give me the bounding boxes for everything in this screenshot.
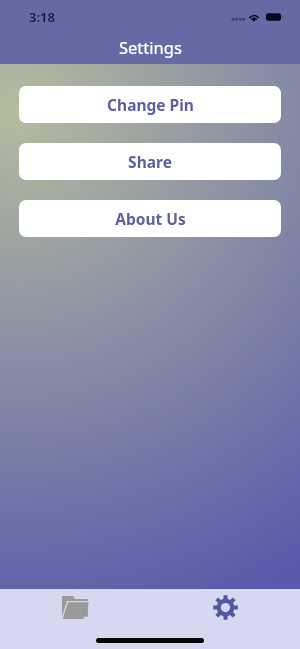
button[interactable]: Settings bbox=[202, 591, 248, 623]
staticText: 3:18 bbox=[29, 8, 55, 26]
button[interactable]: Share bbox=[19, 143, 281, 180]
button[interactable]: Files bbox=[52, 591, 98, 623]
staticText: Share bbox=[128, 151, 172, 172]
staticText: About Us bbox=[115, 208, 186, 229]
staticText: Change Pin bbox=[107, 94, 194, 115]
button[interactable]: Change Pin bbox=[19, 86, 281, 123]
button[interactable]: About Us bbox=[19, 200, 281, 237]
staticText: Settings bbox=[119, 36, 182, 58]
